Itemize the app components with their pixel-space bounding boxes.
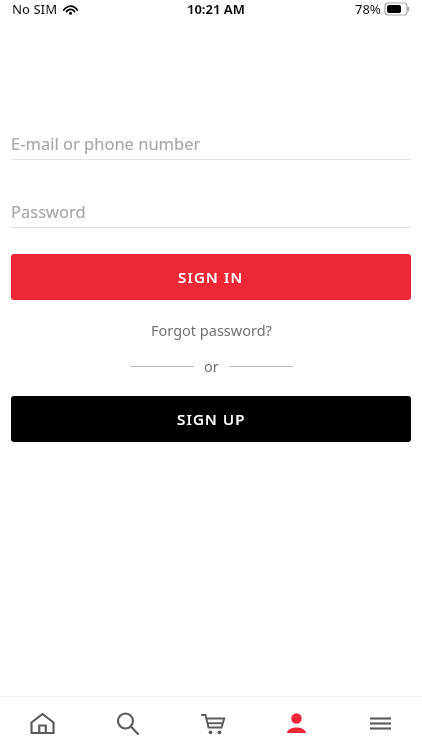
button[interactable]: SIGN IN	[11, 254, 411, 300]
staticText: SIGN UP	[177, 409, 246, 429]
staticText: Password	[11, 200, 86, 222]
staticText: Forgot password?	[151, 320, 272, 340]
staticText: SIGN IN	[178, 267, 244, 287]
staticText: or	[204, 356, 219, 376]
button[interactable]: Menu	[338, 697, 422, 750]
button[interactable]: Forgot password?	[143, 317, 280, 343]
button[interactable]: Search	[85, 697, 170, 750]
button[interactable]: Password	[11, 194, 411, 228]
staticText: No SIM	[12, 0, 58, 18]
staticText: 10:21 AM	[187, 0, 246, 18]
button[interactable]: SIGN UP	[11, 396, 411, 442]
button[interactable]: Cart	[170, 697, 254, 750]
button[interactable]: Home	[0, 697, 85, 750]
staticText: 78%	[355, 0, 381, 18]
staticText: E-mail or phone number	[11, 132, 201, 154]
button[interactable]: E-mail or phone number	[11, 126, 411, 160]
button[interactable]: Account	[254, 697, 338, 750]
